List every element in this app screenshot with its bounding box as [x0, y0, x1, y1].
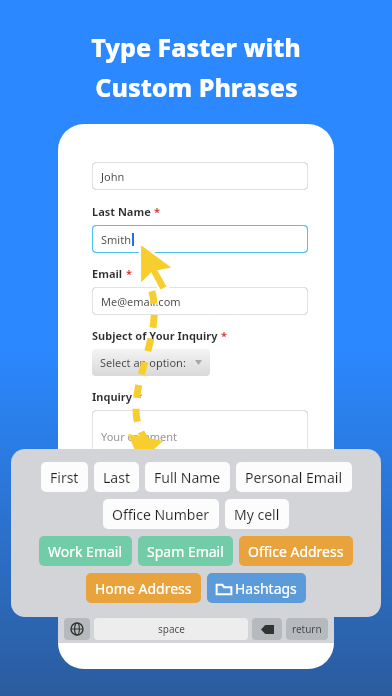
staticText: Select an option: [100, 355, 186, 370]
staticText: Your comment [101, 429, 178, 444]
button[interactable]: My cell [225, 499, 289, 529]
staticText: * [154, 204, 160, 219]
button[interactable]: Your comment [92, 410, 308, 462]
staticText: * [126, 266, 132, 281]
button[interactable]: Hashtags [207, 573, 306, 603]
staticText: Hashtags [235, 579, 297, 598]
staticText: return [292, 622, 322, 636]
staticText: Spam Email [147, 542, 224, 561]
button[interactable]: Spam Email [138, 536, 233, 566]
staticText: Home Address [95, 579, 192, 598]
button[interactable]: Office Address [239, 536, 353, 566]
staticText: Inquiry [92, 389, 133, 404]
staticText: Work Email [48, 542, 123, 561]
staticText: First [50, 468, 79, 487]
button[interactable]: Last [94, 462, 139, 492]
button[interactable]: John [92, 162, 308, 190]
button[interactable]: First [41, 462, 88, 492]
staticText: Custom Phrases [95, 70, 298, 104]
staticText: Type Faster with [91, 30, 301, 64]
staticText: Smith [101, 232, 131, 247]
staticText: Email [92, 266, 123, 281]
staticText: Last [103, 468, 130, 487]
button[interactable]: Home Address [86, 573, 201, 603]
button[interactable]: Smith [92, 225, 308, 253]
button[interactable]: Full Name [145, 462, 230, 492]
staticText: John [101, 169, 125, 184]
staticText: My cell [234, 505, 280, 524]
staticText: Me@email.com [101, 294, 181, 309]
button[interactable]: Office Number [103, 499, 219, 529]
button[interactable]: Work Email [39, 536, 132, 566]
button[interactable]: space [94, 618, 248, 640]
button[interactable]: Me@email.com [92, 287, 308, 315]
staticText: Office Number [112, 505, 210, 524]
button[interactable]: Backspace [252, 618, 282, 640]
button[interactable]: Switch keyboard [64, 618, 90, 640]
staticText: space [158, 622, 185, 636]
staticText: Office Address [248, 542, 344, 561]
staticText: Last Name [92, 204, 151, 219]
staticText: Full Name [154, 468, 221, 487]
button[interactable]: return [286, 618, 328, 640]
staticText: Subject of Your Inquiry [92, 328, 218, 343]
staticText: Personal Email [245, 468, 343, 487]
button[interactable]: Personal Email [236, 462, 352, 492]
staticText: * [136, 389, 142, 404]
staticText: * [221, 328, 227, 343]
button[interactable]: Select an option: [92, 349, 210, 376]
